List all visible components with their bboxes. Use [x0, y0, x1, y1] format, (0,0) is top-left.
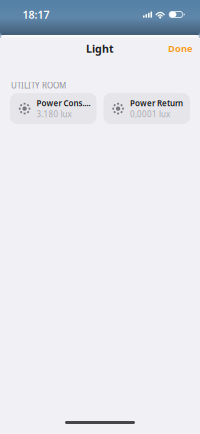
- staticText: Power Return: [130, 98, 183, 108]
- button[interactable]: Done: [161, 36, 200, 61]
- button[interactable]: Power Return: [103, 93, 190, 124]
- staticText: 0,0001 lux: [130, 109, 170, 119]
- staticText: 3.180 lux: [37, 109, 72, 119]
- staticText: 18:17: [22, 7, 49, 22]
- staticText: UTILITY ROOM: [11, 80, 66, 91]
- staticText: Done: [168, 42, 193, 55]
- staticText: Light: [86, 41, 114, 56]
- staticText: Power Cons....: [37, 98, 91, 108]
- button[interactable]: Power Cons....: [10, 93, 96, 124]
